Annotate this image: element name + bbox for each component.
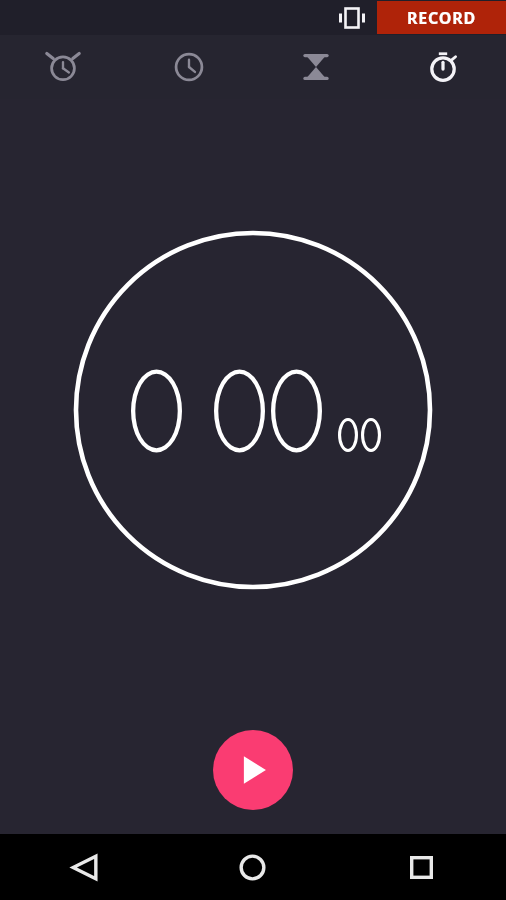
button[interactable]: Clock xyxy=(126,35,252,99)
button[interactable]: Start stopwatch xyxy=(213,730,293,810)
other: Vibrate mode xyxy=(338,4,366,32)
button[interactable]: RECORD xyxy=(377,1,506,34)
button[interactable]: Recent apps xyxy=(337,834,506,900)
button[interactable]: Alarm xyxy=(0,35,126,99)
staticText: RECORD xyxy=(407,7,477,29)
button[interactable]: Timer xyxy=(252,35,379,99)
button[interactable]: Home xyxy=(168,834,337,900)
button[interactable]: Stopwatch xyxy=(379,35,506,99)
button[interactable]: Back xyxy=(0,834,168,900)
